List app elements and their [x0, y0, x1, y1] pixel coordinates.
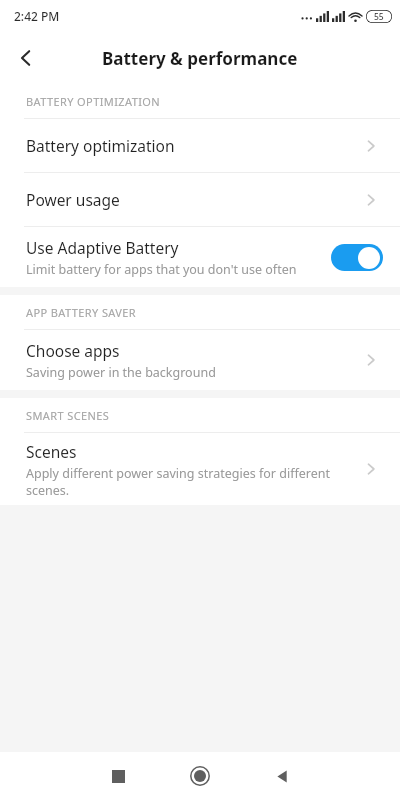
button[interactable]: Choose apps [0, 330, 400, 390]
button[interactable]: Use Adaptive Battery toggle [331, 244, 383, 271]
button[interactable]: Recent apps [94, 752, 142, 800]
staticText: Power usage [26, 189, 120, 210]
staticText: 55 [374, 11, 384, 23]
staticText: Battery optimization [26, 135, 175, 156]
button[interactable]: Back [0, 32, 52, 84]
staticText: 2:42 PM [14, 8, 60, 24]
staticText: Apply different power saving strategies … [26, 465, 355, 498]
staticText: Saving power in the background [26, 364, 216, 381]
staticText: SMART SCENES [26, 408, 110, 423]
button[interactable]: Home [176, 752, 224, 800]
button[interactable]: Back [258, 752, 306, 800]
button[interactable]: Use Adaptive Battery [0, 227, 400, 287]
staticText: Battery & performance [102, 47, 298, 70]
button[interactable]: Battery optimization [0, 119, 400, 172]
staticText: Use Adaptive Battery [26, 237, 179, 258]
staticText: Choose apps [26, 340, 120, 361]
staticText: Scenes [26, 441, 77, 462]
staticText: Limit battery for apps that you don't us… [26, 261, 297, 278]
staticText: BATTERY OPTIMIZATION [26, 94, 161, 109]
button[interactable]: Power usage [0, 173, 400, 226]
staticText: APP BATTERY SAVER [26, 305, 137, 320]
button[interactable]: Scenes [0, 433, 400, 505]
